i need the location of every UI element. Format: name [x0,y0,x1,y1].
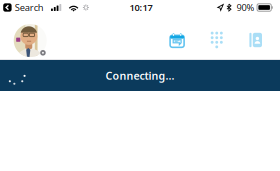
staticText: 90% [237,1,255,14]
button[interactable]: Search [0,1,44,14]
button[interactable]: Contacts [249,33,262,47]
staticText: 10:17 [129,1,152,14]
button[interactable]: Profile and settings [0,21,47,54]
staticText: Connecting... [105,68,174,83]
button[interactable]: Keypad [211,32,222,48]
staticText: Search [15,1,44,14]
button[interactable]: Schedule [170,32,184,47]
